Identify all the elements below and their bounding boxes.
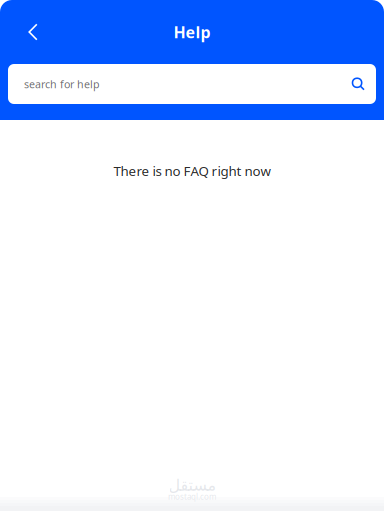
staticText: There is no FAQ right now	[113, 162, 270, 180]
staticText: search for help	[24, 77, 100, 91]
staticText: مستقل	[168, 476, 216, 494]
staticText: mostaql.com	[168, 491, 216, 502]
button[interactable]: search for help	[8, 64, 376, 104]
button[interactable]: Back	[11, 10, 55, 54]
staticText: Help	[173, 21, 210, 43]
